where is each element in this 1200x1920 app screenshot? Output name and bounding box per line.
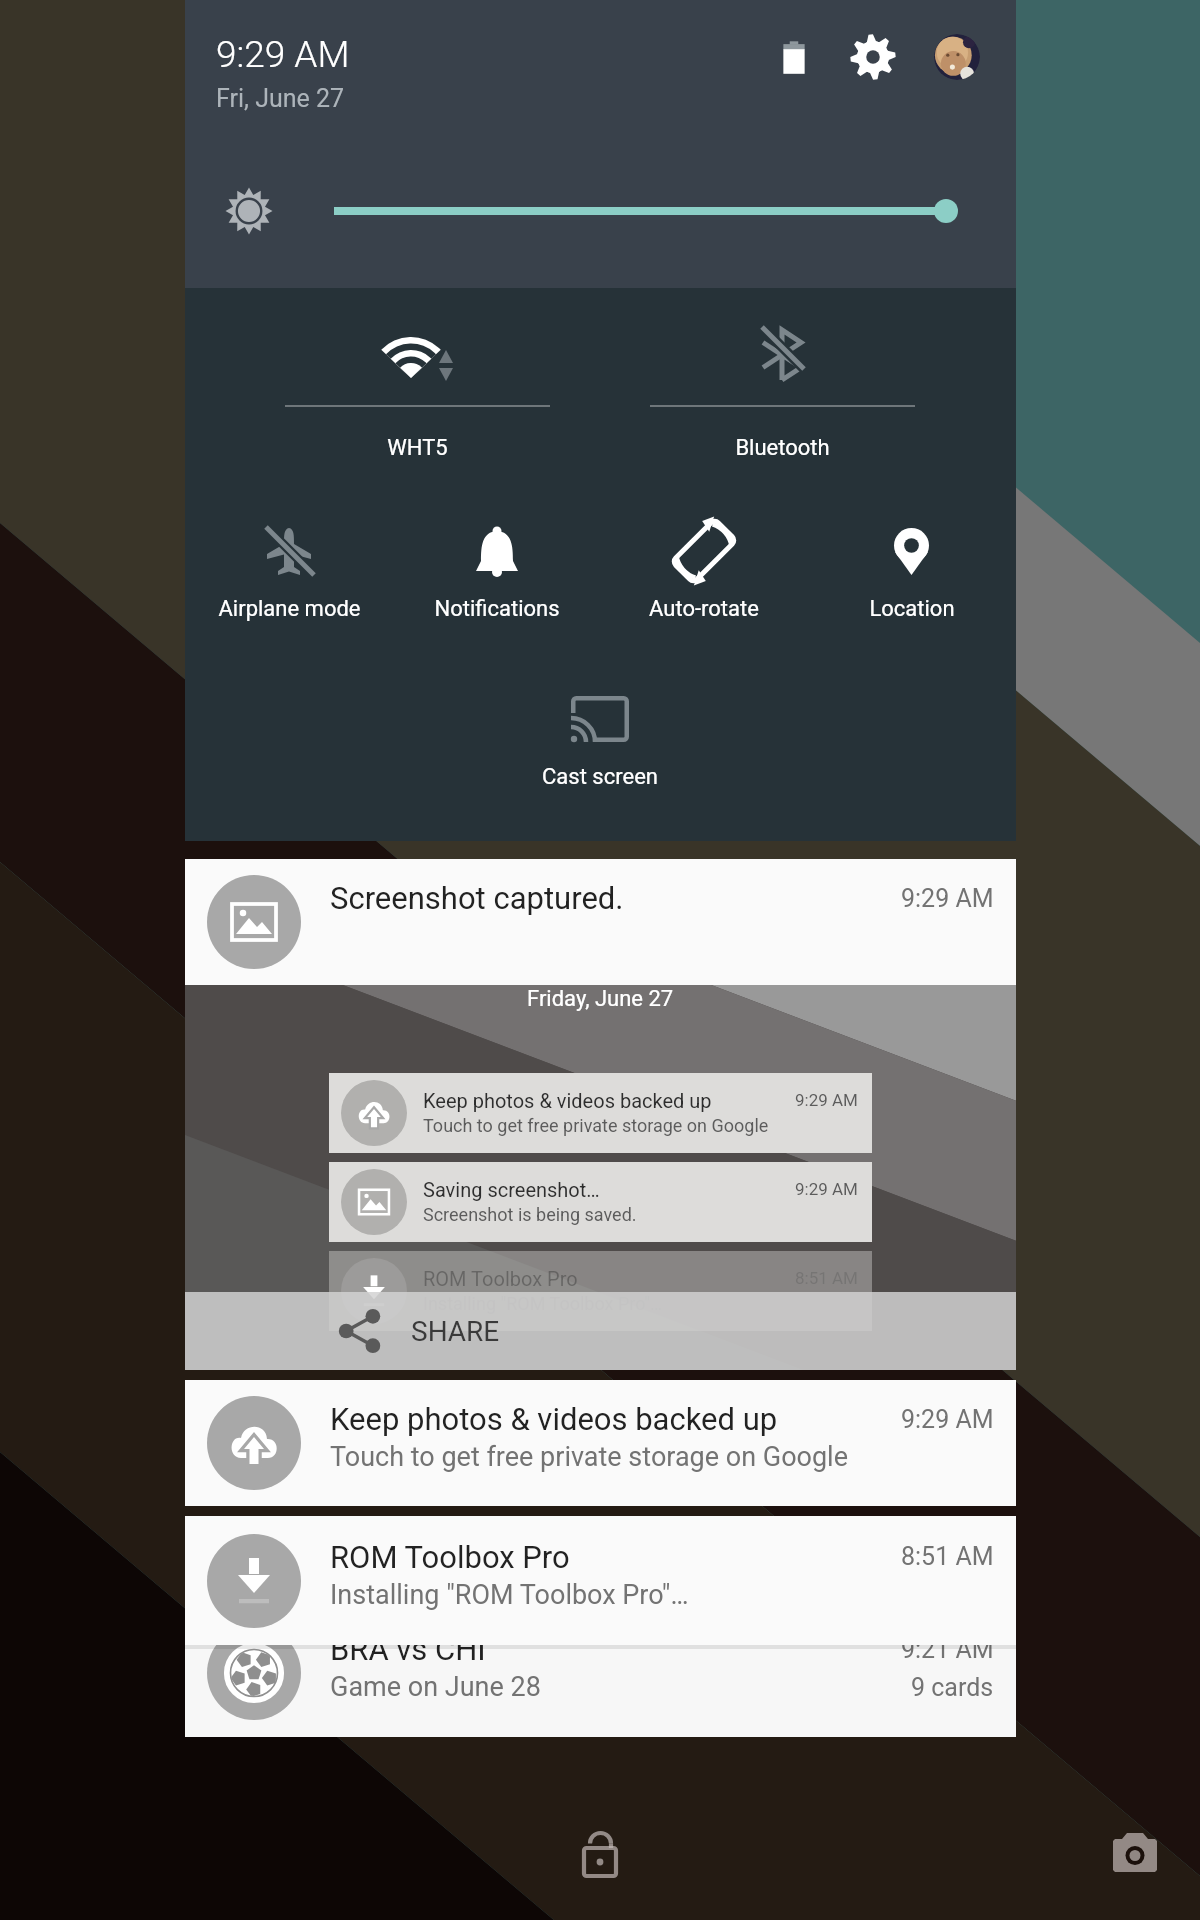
staticText: Notifications: [434, 596, 560, 622]
staticText: 9:29 AM: [901, 884, 994, 913]
button[interactable]: Notifications: [393, 501, 601, 611]
staticText: Auto-rotate: [649, 596, 759, 622]
button[interactable]: Unlock: [560, 1814, 640, 1894]
staticText: Cast screen: [542, 764, 658, 790]
staticText: 9 cards: [911, 1673, 994, 1702]
button[interactable]: Location: [808, 501, 1016, 611]
staticText: ROM Toolbox Pro: [423, 1267, 578, 1290]
staticText: BRA vs CHI: [330, 1631, 486, 1667]
staticText: Airplane mode: [218, 596, 361, 622]
staticText: 8:51 AM: [795, 1268, 858, 1288]
staticText: 9:29 AM: [901, 1405, 994, 1434]
staticText: 9:29 AM: [795, 1090, 858, 1110]
button[interactable]: Cast screen: [496, 669, 704, 779]
staticText: Keep photos & videos backed up: [330, 1401, 778, 1437]
staticText: SHARE: [411, 1315, 500, 1348]
staticText: Friday, June 27: [527, 986, 674, 1012]
button[interactable]: Settings: [846, 30, 900, 84]
staticText: Screenshot captured.: [330, 880, 624, 916]
staticText: Location: [869, 596, 955, 622]
button[interactable]: SHARE: [185, 1292, 1016, 1370]
button[interactable]: BRA vs CHI: [185, 1516, 1016, 1737]
staticText: 9:21 AM: [901, 1635, 994, 1664]
staticText: 9:29 AM: [795, 1179, 858, 1199]
staticText: Keep photos & videos backed up: [423, 1089, 712, 1112]
staticText: ROM Toolbox Pro: [330, 1539, 570, 1575]
button[interactable]: User profile: [934, 34, 980, 80]
staticText: Game on June 28: [330, 1671, 541, 1703]
staticText: Installing "ROM Toolbox Pro"…: [330, 1579, 689, 1611]
staticText: Touch to get free private storage on Goo…: [423, 1115, 769, 1136]
button[interactable]: Auto-rotate: [600, 501, 808, 611]
staticText: Touch to get free private storage on Goo…: [330, 1441, 848, 1473]
button[interactable]: Keep photos & videos backed up: [185, 1380, 1016, 1506]
button[interactable]: Battery status: [766, 29, 822, 85]
button[interactable]: WHT5: [235, 288, 600, 488]
button[interactable]: Screenshot captured.: [185, 859, 1016, 985]
staticText: Saving screenshot…: [423, 1178, 600, 1201]
staticText: Bluetooth: [735, 435, 830, 461]
staticText: Fri, June 27: [216, 84, 345, 113]
staticText: 9:29 AM: [216, 33, 350, 76]
staticText: Screenshot is being saved.: [423, 1204, 637, 1225]
button[interactable]: Airplane mode: [185, 501, 393, 611]
staticText: 8:51 AM: [901, 1542, 994, 1571]
button[interactable]: Camera: [1095, 1812, 1175, 1892]
button[interactable]: ROM Toolbox Pro: [185, 1516, 1016, 1645]
staticText: WHT5: [387, 435, 448, 461]
button[interactable]: Bluetooth: [600, 288, 965, 488]
